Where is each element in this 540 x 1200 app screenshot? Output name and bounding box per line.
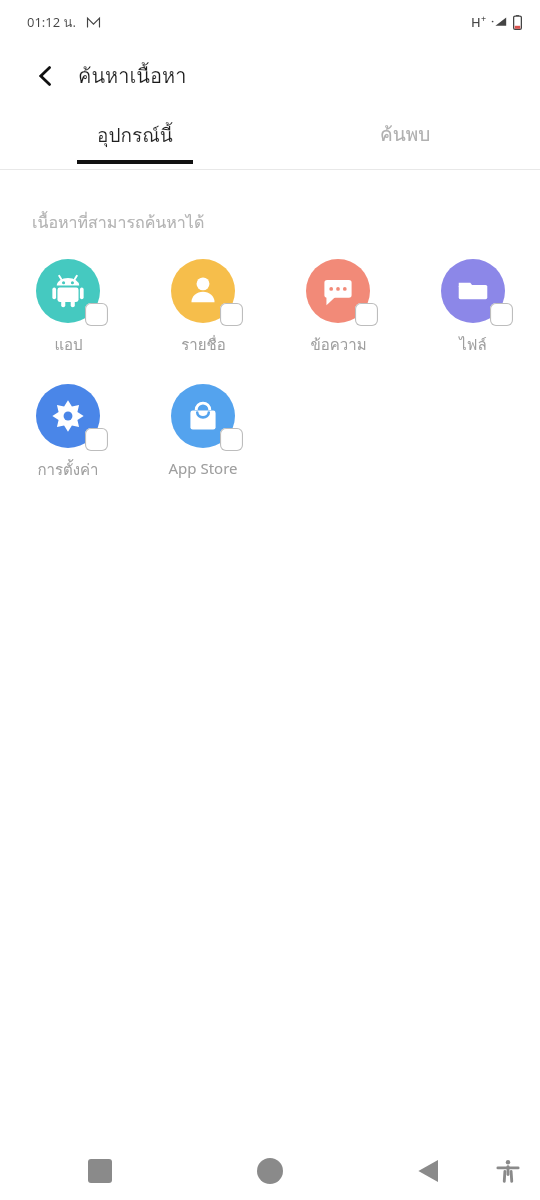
button[interactable]: ค้นพบ <box>270 108 540 170</box>
button[interactable]: Accessibility <box>486 1149 530 1193</box>
button[interactable]: Back <box>24 54 68 98</box>
button[interactable]: App Store <box>156 382 250 480</box>
staticText: รายชื่อ <box>181 333 226 357</box>
staticText: อุปกรณ์นี้ <box>97 120 173 150</box>
button[interactable]: แอป <box>21 257 115 359</box>
staticText: ค้นหาเนื้อหา <box>78 60 187 92</box>
button[interactable]: Recent apps <box>76 1147 124 1195</box>
staticText: การตั้งค่า <box>37 458 99 482</box>
button[interactable]: รายชื่อ <box>156 257 250 359</box>
staticText: ค้นพบ <box>380 119 431 149</box>
staticText: App Store <box>168 458 238 478</box>
staticText: H <box>471 13 481 31</box>
staticText: เนื้อหาที่สามารถค้นหาได้ <box>32 210 205 235</box>
button[interactable]: ข้อความ <box>291 257 385 359</box>
button[interactable]: การตั้งค่า <box>21 382 115 484</box>
button[interactable]: อุปกรณ์นี้ <box>0 108 270 170</box>
staticText: ไฟล์ <box>459 333 487 357</box>
staticText: แอป <box>54 333 83 357</box>
button[interactable]: Home <box>246 1147 294 1195</box>
button[interactable]: ไฟล์ <box>426 257 520 359</box>
staticText: + <box>481 12 487 24</box>
staticText: ข้อความ <box>310 333 367 357</box>
button[interactable]: Back <box>404 1147 452 1195</box>
staticText: 01:12 น. <box>27 12 76 33</box>
